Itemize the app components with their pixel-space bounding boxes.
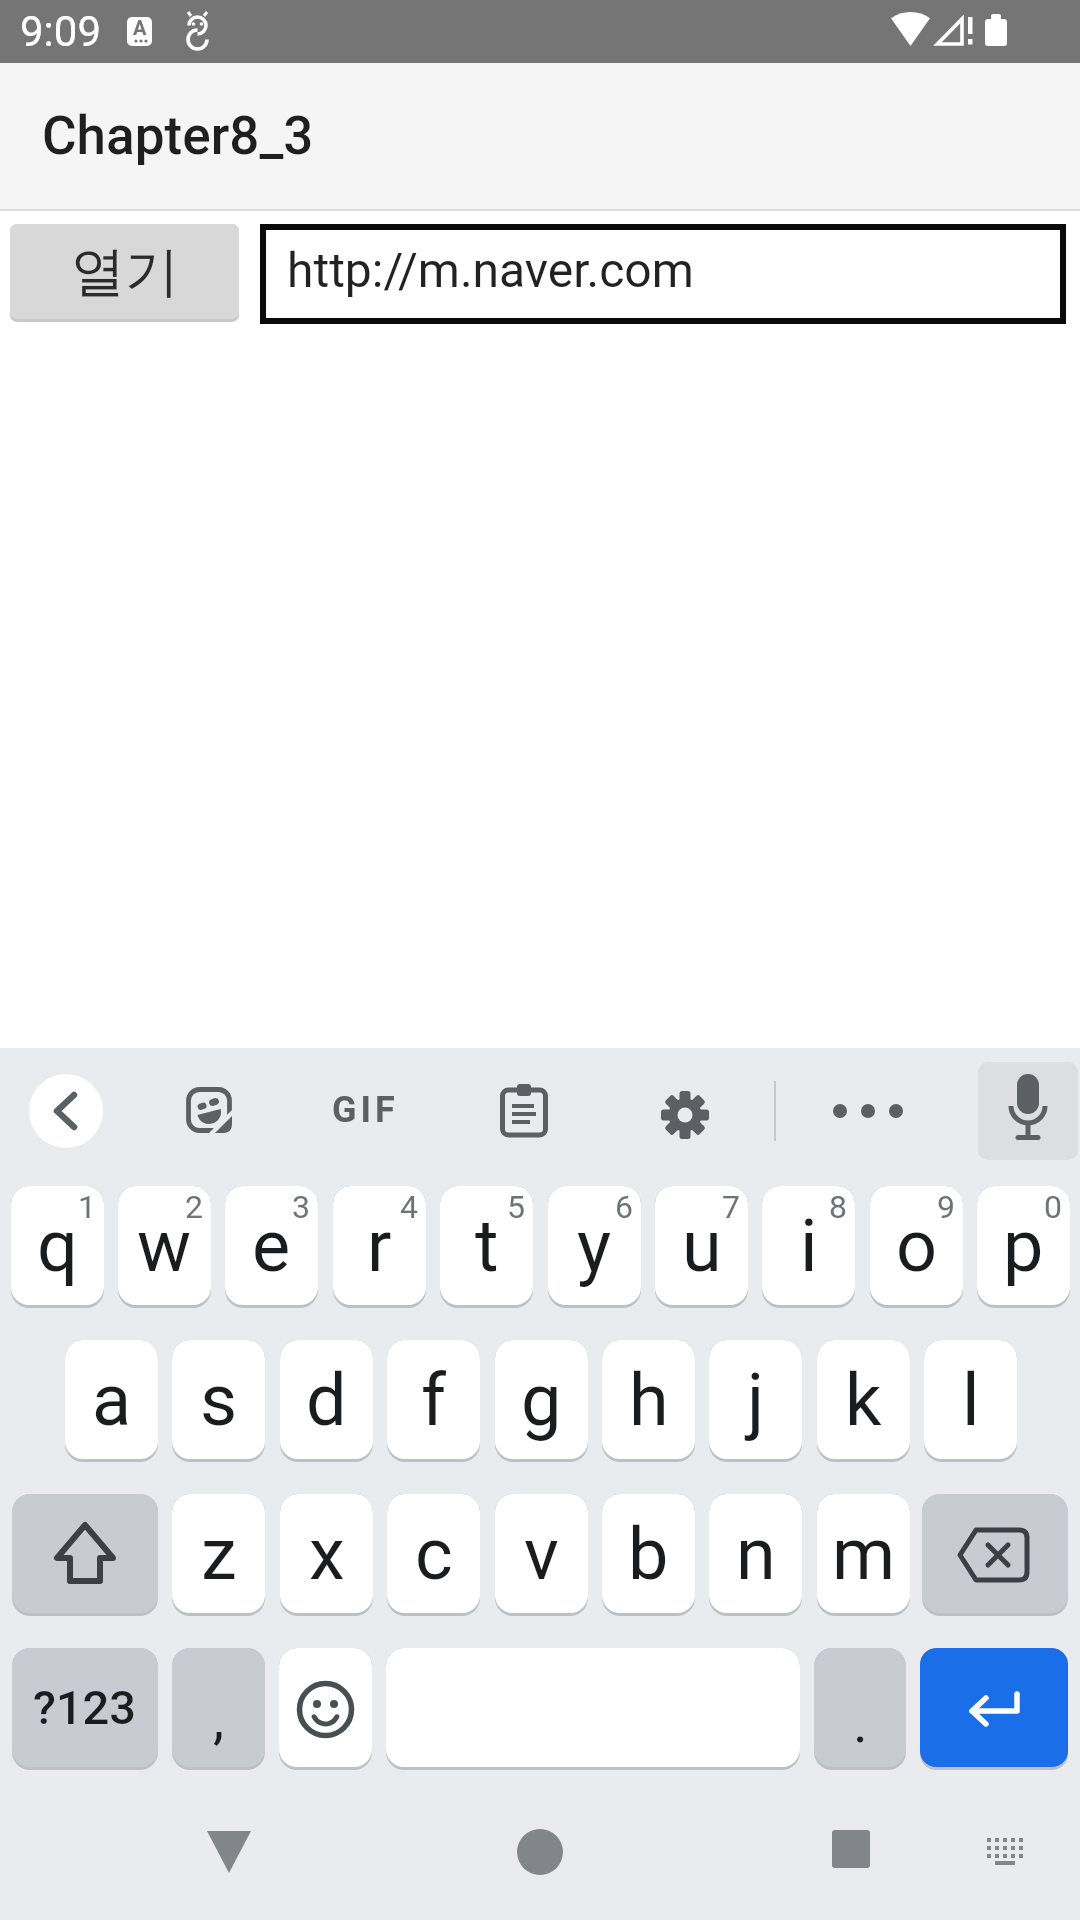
button[interactable] xyxy=(709,1494,802,1616)
staticText: 1 xyxy=(78,1188,96,1226)
button[interactable] xyxy=(870,1186,963,1308)
staticText: h xyxy=(629,1358,669,1442)
staticText: 4 xyxy=(400,1188,418,1226)
staticText: c xyxy=(415,1512,453,1596)
staticText: 2 xyxy=(185,1188,203,1226)
button[interactable] xyxy=(280,1494,373,1616)
button[interactable] xyxy=(977,1186,1070,1308)
button[interactable] xyxy=(172,1648,265,1770)
button[interactable] xyxy=(922,1494,1068,1616)
staticText: 열기 xyxy=(71,238,179,306)
button[interactable] xyxy=(655,1186,748,1308)
button[interactable] xyxy=(172,1340,265,1462)
button[interactable]: 열기 xyxy=(10,224,239,322)
staticText: ?123 xyxy=(33,1680,137,1735)
staticText: g xyxy=(521,1358,562,1442)
button[interactable]: http://m.naver.com xyxy=(260,224,1066,324)
staticText: Chapter8_3 xyxy=(42,105,314,167)
button[interactable] xyxy=(387,1494,480,1616)
button[interactable] xyxy=(225,1186,318,1308)
button[interactable] xyxy=(500,1084,548,1138)
button[interactable] xyxy=(11,1186,104,1308)
staticText: 3 xyxy=(292,1188,310,1226)
button[interactable] xyxy=(709,1340,802,1462)
button[interactable] xyxy=(387,1340,480,1462)
button[interactable] xyxy=(602,1340,695,1462)
button[interactable] xyxy=(817,1340,910,1462)
staticText: f xyxy=(421,1358,447,1442)
staticText: 9:09 xyxy=(20,7,101,56)
button[interactable] xyxy=(661,1091,709,1139)
staticText: n xyxy=(736,1512,776,1596)
staticText: z xyxy=(201,1512,237,1596)
staticText: 9 xyxy=(937,1188,955,1226)
button[interactable] xyxy=(762,1186,855,1308)
button[interactable] xyxy=(12,1648,158,1770)
button[interactable] xyxy=(29,1074,103,1148)
button[interactable] xyxy=(826,1097,910,1125)
staticText: A xyxy=(133,16,147,39)
staticText: i xyxy=(800,1204,818,1288)
button[interactable] xyxy=(975,1820,1035,1884)
button[interactable] xyxy=(180,1810,278,1894)
staticText: GIF xyxy=(332,1089,399,1131)
button[interactable] xyxy=(333,1186,426,1308)
staticText: m xyxy=(832,1512,896,1596)
button[interactable] xyxy=(279,1648,372,1770)
staticText: . xyxy=(853,1690,868,1756)
button[interactable] xyxy=(172,1494,265,1616)
button[interactable] xyxy=(491,1810,589,1894)
staticText: o xyxy=(896,1204,938,1288)
staticText: 0 xyxy=(1044,1188,1062,1226)
staticText: 8 xyxy=(829,1188,847,1226)
button[interactable] xyxy=(924,1340,1017,1462)
staticText: b xyxy=(628,1512,669,1596)
staticText: 5 xyxy=(507,1188,525,1226)
button[interactable] xyxy=(440,1186,533,1308)
staticText: t xyxy=(475,1204,499,1288)
staticText: q xyxy=(37,1204,78,1288)
staticText: , xyxy=(213,1686,225,1752)
staticText: w xyxy=(137,1204,192,1288)
button[interactable] xyxy=(802,1810,900,1894)
staticText: x xyxy=(309,1512,345,1596)
button[interactable] xyxy=(920,1648,1068,1770)
button[interactable] xyxy=(12,1494,158,1616)
staticText: http://m.naver.com xyxy=(287,242,694,298)
staticText: v xyxy=(524,1512,559,1596)
staticText: p xyxy=(1003,1204,1044,1288)
staticText: s xyxy=(200,1358,238,1442)
button[interactable] xyxy=(817,1494,910,1616)
staticText: e xyxy=(252,1204,291,1288)
button[interactable] xyxy=(495,1340,588,1462)
button[interactable] xyxy=(495,1494,588,1616)
button[interactable] xyxy=(320,1085,410,1135)
staticText: l xyxy=(962,1358,980,1442)
staticText: d xyxy=(306,1358,347,1442)
button[interactable] xyxy=(186,1087,232,1133)
staticText: y xyxy=(577,1204,612,1288)
staticText: r xyxy=(367,1204,392,1288)
button[interactable] xyxy=(65,1340,158,1462)
button[interactable] xyxy=(118,1186,211,1308)
staticText: j xyxy=(747,1358,765,1442)
staticText: a xyxy=(92,1358,132,1442)
button[interactable] xyxy=(814,1648,906,1770)
staticText: 7 xyxy=(722,1188,740,1226)
button[interactable] xyxy=(602,1494,695,1616)
button[interactable] xyxy=(386,1648,800,1770)
staticText: u xyxy=(682,1204,722,1288)
button[interactable] xyxy=(280,1340,373,1462)
staticText: k xyxy=(845,1358,882,1442)
button[interactable] xyxy=(548,1186,641,1308)
staticText: 6 xyxy=(615,1188,633,1226)
button[interactable] xyxy=(978,1062,1078,1160)
